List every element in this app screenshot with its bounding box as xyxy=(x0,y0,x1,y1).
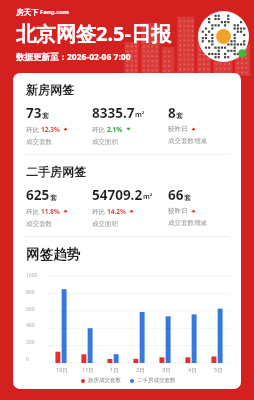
staticText: 200 xyxy=(26,339,35,346)
staticText: 成交套数增减 xyxy=(168,137,207,145)
staticText: 北京网签2.5-日报 xyxy=(16,20,171,47)
staticText: 二手房网签 xyxy=(26,164,86,179)
staticText: 625 xyxy=(26,186,50,204)
staticText: 66 xyxy=(168,186,184,204)
staticText: Fang.com xyxy=(40,8,69,16)
staticText: 600 xyxy=(26,306,35,313)
staticText: 14.2% xyxy=(107,207,126,216)
staticText: 环比 xyxy=(92,126,105,134)
staticText: 4日 xyxy=(188,366,197,374)
staticText: 5日 xyxy=(214,366,223,374)
staticText: 环比 xyxy=(26,126,39,134)
staticText: 成交套数 xyxy=(26,138,52,146)
staticText: 1日 xyxy=(110,366,119,374)
button[interactable]: 新房网签 xyxy=(13,73,241,154)
staticText: 成交套数增减 xyxy=(168,219,207,227)
staticText: 2.1% xyxy=(107,125,123,134)
staticText: 套 xyxy=(184,193,191,202)
staticText: 较昨日 xyxy=(168,207,188,215)
staticText: 二手房成交套数 xyxy=(137,377,176,384)
staticText: 3日 xyxy=(162,366,171,374)
staticText: 10日 xyxy=(56,366,68,374)
staticText: 400 xyxy=(26,322,35,329)
staticText: 新房网签 xyxy=(26,82,74,97)
staticText: 8 xyxy=(168,104,176,122)
staticText: 12.3% xyxy=(41,125,60,134)
staticText: 1000 xyxy=(26,272,38,279)
button[interactable]: 房天下二维码 xyxy=(198,11,249,62)
staticText: 较昨日 xyxy=(168,125,188,133)
staticText: 环比 xyxy=(92,208,105,216)
button[interactable]: 网签趋势 xyxy=(13,237,241,389)
staticText: 11.8% xyxy=(41,207,60,216)
staticText: 成交面积 xyxy=(92,220,118,228)
staticText: m² xyxy=(135,110,145,120)
staticText: m² xyxy=(143,192,153,202)
staticText: 2日 xyxy=(136,366,145,374)
staticText: 套 xyxy=(42,111,49,120)
staticText: 成交面积 xyxy=(92,138,118,146)
staticText: 环比 xyxy=(26,208,39,216)
staticText: 73 xyxy=(26,104,42,122)
staticText: 8335.7 xyxy=(92,104,135,122)
staticText: 成交套数 xyxy=(26,220,52,228)
staticText: 套 xyxy=(50,193,57,202)
staticText: 54709.2 xyxy=(92,186,143,204)
staticText: 网签趋势 xyxy=(26,246,80,263)
button[interactable]: 二手房网签 xyxy=(13,155,241,236)
staticText: 数据更新至：2026-02-06 7:00 xyxy=(16,51,131,63)
staticText: 房天下 xyxy=(16,8,39,17)
staticText: 800 xyxy=(26,289,35,296)
staticText: 新房成交套数 xyxy=(88,377,121,384)
staticText: 11日 xyxy=(82,366,94,374)
staticText: 0 xyxy=(26,356,29,363)
staticText: 套 xyxy=(176,111,183,120)
